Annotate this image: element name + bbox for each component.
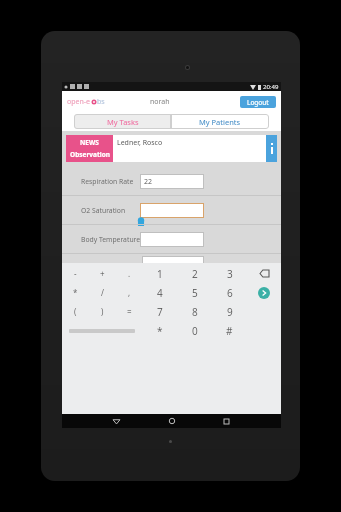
staticText: , xyxy=(128,287,131,298)
button[interactable]: 1 xyxy=(142,264,177,283)
staticText: norah xyxy=(150,97,170,107)
button[interactable]: . xyxy=(116,264,142,283)
staticText: Respiration Rate xyxy=(81,177,134,186)
button[interactable]: 22 xyxy=(140,174,204,189)
staticText: open-e xyxy=(67,97,91,107)
button[interactable]: ) xyxy=(89,302,116,321)
staticText: O2 Saturation xyxy=(81,206,126,215)
button[interactable]: = xyxy=(116,302,142,321)
button[interactable]: + xyxy=(89,264,116,283)
button[interactable]: 6 xyxy=(212,283,247,302)
button[interactable]: 2 xyxy=(177,264,212,283)
button[interactable]: Recents xyxy=(199,414,254,428)
button[interactable] xyxy=(140,203,204,218)
staticText: 7 xyxy=(157,305,163,319)
staticText: 2 xyxy=(192,267,198,281)
staticText: 5 xyxy=(192,286,198,300)
button[interactable]: NEWS xyxy=(66,135,277,162)
staticText: * xyxy=(157,324,163,338)
staticText: 1 xyxy=(157,267,163,281)
button[interactable]: 0 xyxy=(177,321,212,340)
button[interactable]: 8 xyxy=(177,302,212,321)
staticText: 4 xyxy=(157,286,163,300)
staticText: 20:49 xyxy=(263,83,279,91)
button[interactable]: 3 xyxy=(212,264,247,283)
staticText: 8 xyxy=(192,305,198,319)
staticText: My Tasks xyxy=(107,117,139,127)
staticText: Ledner, Rosco xyxy=(117,138,163,148)
button[interactable]: 9 xyxy=(212,302,247,321)
staticText: 9 xyxy=(227,305,233,319)
staticText: Observation xyxy=(70,150,110,159)
button[interactable]: * xyxy=(142,321,177,340)
button[interactable]: / xyxy=(89,283,116,302)
staticText: / xyxy=(101,287,104,298)
staticText: ( xyxy=(74,306,77,317)
button[interactable]: 5 xyxy=(177,283,212,302)
button[interactable] xyxy=(62,321,142,340)
staticText: Logout xyxy=(247,98,269,107)
staticText: = xyxy=(127,306,132,317)
button[interactable]: # xyxy=(212,321,247,340)
button[interactable]: Information xyxy=(266,135,277,162)
button[interactable]: , xyxy=(116,283,142,302)
staticText: . xyxy=(128,268,131,279)
staticText: 6 xyxy=(227,286,233,300)
staticText: 22 xyxy=(144,177,153,187)
button[interactable]: Backspace xyxy=(247,264,281,283)
button[interactable]: Home xyxy=(144,414,199,428)
staticText: NEWS xyxy=(80,138,99,147)
button[interactable] xyxy=(140,232,204,247)
button[interactable]: Back xyxy=(89,414,144,428)
button[interactable]: Enter xyxy=(247,283,281,302)
button[interactable]: ( xyxy=(62,302,89,321)
button[interactable]: * xyxy=(62,283,89,302)
button[interactable]: My Patients xyxy=(171,114,269,129)
button[interactable]: 7 xyxy=(142,302,177,321)
button[interactable]: 4 xyxy=(142,283,177,302)
staticText: * xyxy=(73,287,78,298)
staticText: My Patients xyxy=(199,117,241,127)
staticText: + xyxy=(100,268,105,279)
staticText: ) xyxy=(101,306,104,317)
staticText: 0 xyxy=(192,324,198,338)
staticText: - xyxy=(74,268,77,279)
button[interactable]: My Tasks xyxy=(74,114,171,129)
staticText: Body Temperature xyxy=(81,235,141,244)
staticText: bs xyxy=(97,97,105,107)
staticText: # xyxy=(226,324,233,338)
staticText: 3 xyxy=(227,267,233,281)
button[interactable]: - xyxy=(62,264,89,283)
button[interactable]: Logout xyxy=(240,96,276,108)
